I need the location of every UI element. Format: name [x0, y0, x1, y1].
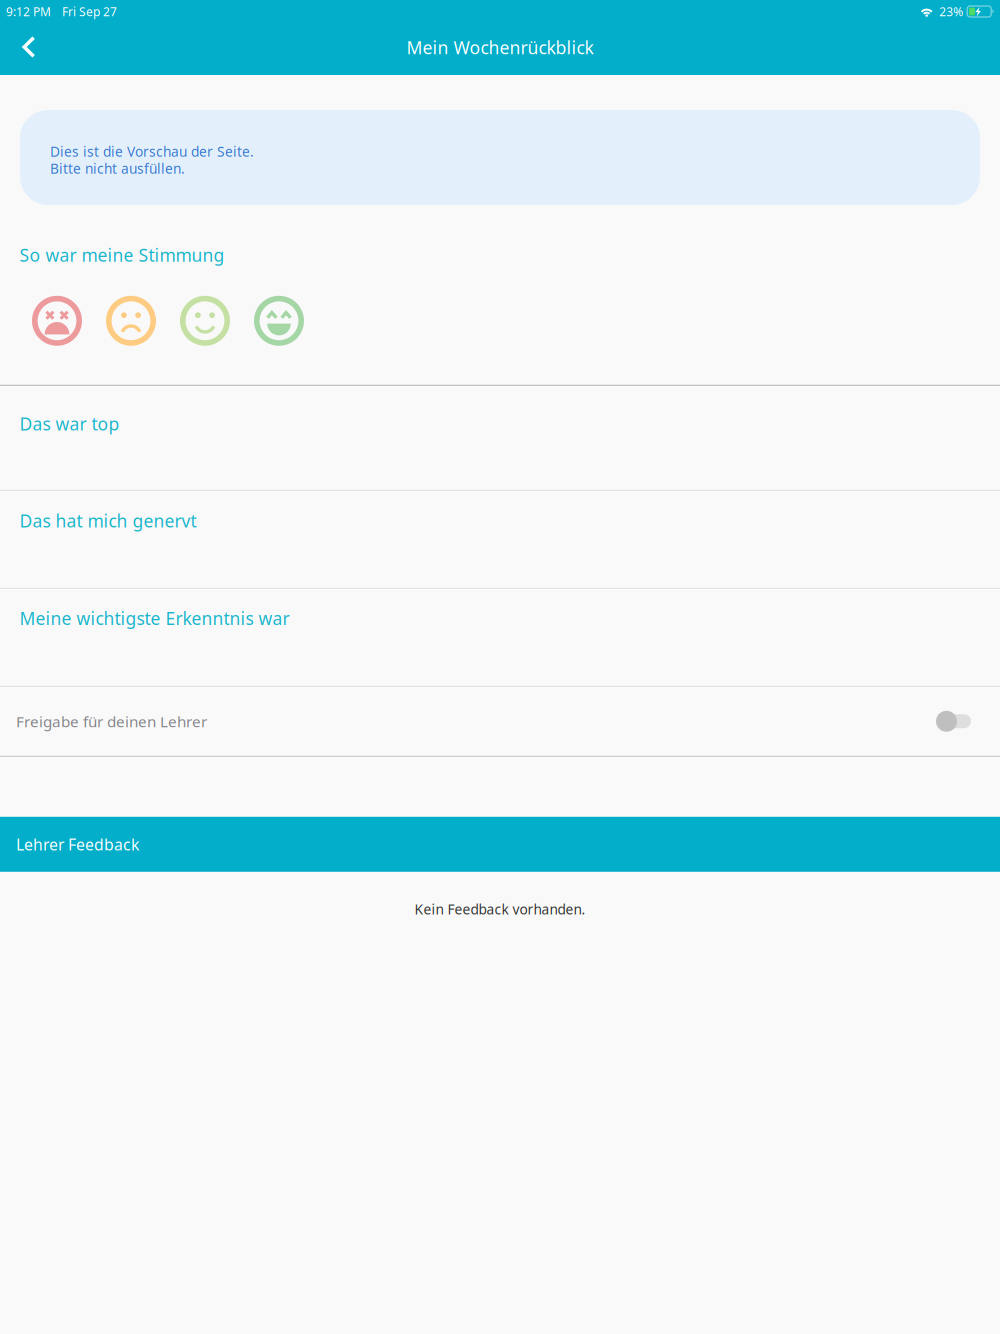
button[interactable]: Zurück	[0, 23, 56, 75]
staticText: Lehrer Feedback	[16, 834, 139, 855]
staticText: Dies ist die Vorschau der Seite.	[50, 142, 254, 161]
staticText: Meine wichtigste Erkenntnis war	[19, 606, 289, 630]
button[interactable]: Sehr gut	[254, 296, 304, 346]
button[interactable]: Das war top	[0, 387, 1000, 489]
staticText: Das war top	[19, 412, 119, 436]
staticText: Fri Sep 27	[62, 3, 117, 20]
button[interactable]: Freigabe für deinen Lehrer	[0, 688, 1000, 755]
button[interactable]: Das hat mich genervt	[0, 492, 1000, 587]
staticText: 23%	[939, 3, 963, 20]
button[interactable]: Gut	[180, 296, 230, 346]
staticText: Freigabe für deinen Lehrer	[16, 711, 207, 732]
staticText: Bitte nicht ausfüllen.	[50, 159, 185, 178]
button[interactable]: Sehr schlecht	[32, 296, 82, 346]
button[interactable]: Schlecht	[106, 296, 156, 346]
button[interactable]: Meine wichtigste Erkenntnis war	[0, 590, 1000, 685]
staticText: Das hat mich genervt	[19, 509, 196, 533]
staticText: So war meine Stimmung	[19, 243, 224, 267]
staticText: 9:12 PM	[6, 3, 51, 20]
staticText: Mein Wochenrückblick	[406, 35, 593, 59]
staticText: Kein Feedback vorhanden.	[414, 900, 585, 918]
